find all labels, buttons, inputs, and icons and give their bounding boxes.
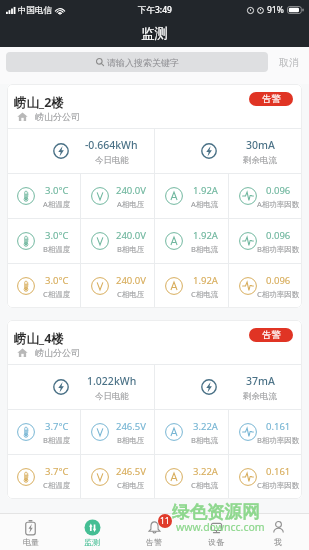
staticText: 0.161 [266,465,291,478]
staticText: B相温度 [43,244,71,254]
staticText: A相电压 [117,199,145,209]
staticText: 下午3:49 [138,4,172,16]
staticText: 崂山_2楼 [14,94,64,111]
staticText: 37mA [246,374,275,388]
staticText: 11 [160,515,170,527]
staticText: 监测 [84,537,100,547]
staticText: 246.5V [116,420,146,433]
staticText: 3.7°C [45,420,69,433]
staticText: 设备 [208,537,224,547]
staticText: A相电流 [191,199,219,209]
staticText: B相电压 [117,435,145,445]
staticText: C相功率因数 [257,480,300,490]
staticText: 1.92A [193,184,218,197]
staticText: B相温度 [43,435,71,445]
staticText: 我 [274,537,282,547]
staticText: 240.0V [116,184,146,197]
button[interactable]: 告警 [249,92,293,106]
staticText: 246.5V [116,465,146,478]
staticText: 告警 [262,93,281,105]
staticText: 3.0°C [45,184,69,197]
staticText: 告警 [146,537,162,547]
button[interactable]: 崂山_4楼 [7,320,302,499]
staticText: 今日电能 [95,391,129,402]
staticText: 1.92A [193,274,218,287]
staticText: C相电压 [117,480,145,490]
button[interactable]: 取消 [272,52,305,72]
staticText: 崂山分公司 [35,111,80,122]
staticText: 剩余电流 [243,391,277,402]
button[interactable]: 监测 [61,514,123,550]
staticText: 0.161 [266,420,291,433]
button[interactable]: 崂山_2楼 [7,84,302,308]
staticText: B相功率因数 [257,435,300,445]
staticText: 取消 [279,56,299,69]
staticText: 3.22A [193,465,218,478]
staticText: 0.096 [266,274,291,287]
button[interactable]: 请输入搜索关键字 [6,52,268,72]
staticText: -0.664kWh [85,138,138,152]
staticText: 崂山分公司 [35,347,80,358]
staticText: 中国电信 [18,5,52,16]
staticText: 3.22A [193,420,218,433]
staticText: 电量 [23,537,39,547]
staticText: 91% [267,4,284,16]
button[interactable]: 我 [247,514,309,550]
staticText: 0.096 [266,184,291,197]
staticText: B相电压 [117,244,145,254]
staticText: 30mA [246,138,275,152]
button[interactable]: 告警 [249,328,293,342]
staticText: B相功率因数 [257,244,300,254]
staticText: A相温度 [43,199,71,209]
button[interactable]: 告警 [123,514,185,550]
staticText: C相电压 [117,289,145,299]
staticText: 240.0V [116,229,146,242]
staticText: 3.7°C [45,465,69,478]
staticText: B相电流 [191,244,219,254]
staticText: C相功率因数 [257,289,300,299]
staticText: B相电流 [191,435,219,445]
staticText: C相电流 [191,480,219,490]
staticText: 1.022kWh [87,374,137,388]
staticText: C相温度 [43,289,71,299]
staticText: 3.0°C [45,229,69,242]
staticText: C相电流 [191,289,219,299]
staticText: 崂山_4楼 [14,330,64,347]
staticText: 0.096 [266,229,291,242]
staticText: 1.92A [193,229,218,242]
staticText: A相功率因数 [257,199,300,209]
staticText: 请输入搜索关键字 [107,57,179,68]
staticText: 240.0V [116,274,146,287]
staticText: 监测 [141,25,168,42]
button[interactable]: 设备 [185,514,247,550]
staticText: 剩余电流 [243,155,277,166]
staticText: 绿色资源网 [172,501,260,523]
staticText: 今日电能 [95,155,129,166]
staticText: C相温度 [43,480,71,490]
button[interactable]: 电量 [0,514,61,550]
staticText: 告警 [262,329,281,341]
staticText: www.downcc.com [176,520,265,534]
staticText: 3.0°C [45,274,69,287]
